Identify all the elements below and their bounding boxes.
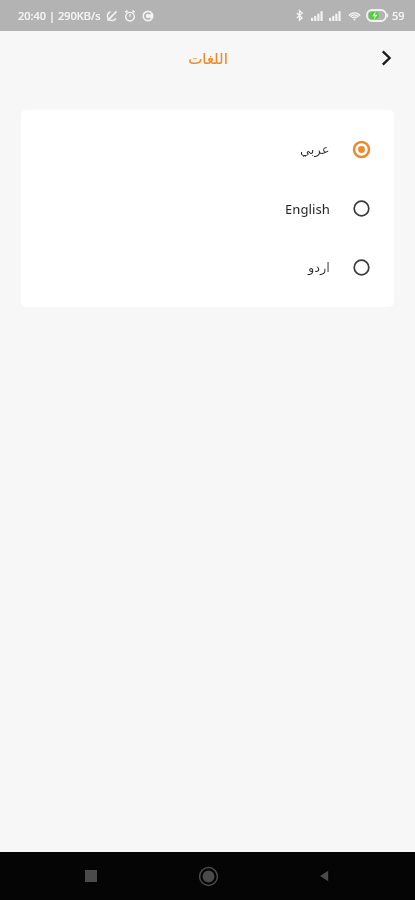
staticText: English — [285, 200, 330, 218]
button[interactable]: Recent apps — [65, 852, 117, 900]
staticText: 59 — [392, 8, 405, 23]
button[interactable]: Home — [182, 852, 234, 900]
button[interactable]: Forward — [363, 35, 409, 81]
staticText: اللغات — [188, 50, 228, 67]
button[interactable]: Back — [298, 852, 350, 900]
button[interactable]: عربي — [21, 120, 394, 179]
staticText: عربي — [300, 142, 330, 157]
button[interactable]: اردو — [21, 238, 394, 297]
staticText: 20:40 | 290KB/s — [18, 8, 101, 23]
button[interactable]: English — [21, 179, 394, 238]
staticText: اردو — [308, 260, 330, 275]
